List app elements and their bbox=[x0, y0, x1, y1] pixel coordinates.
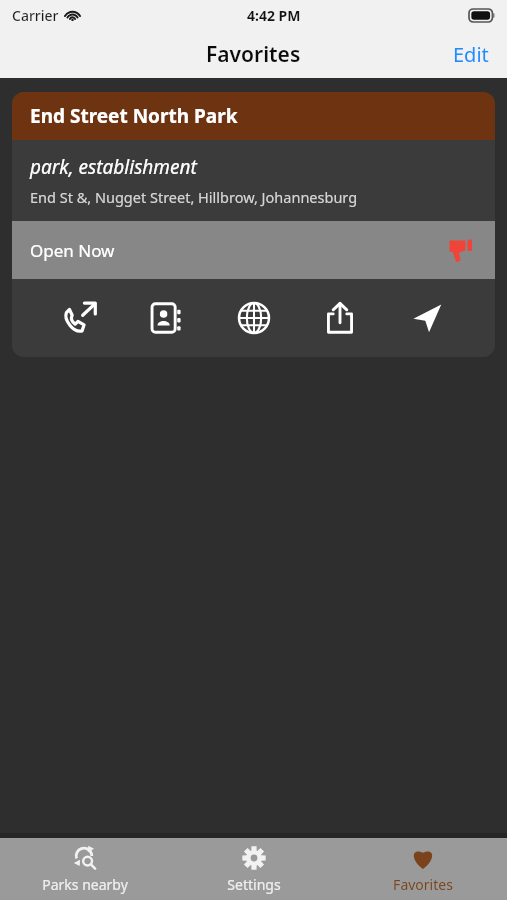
staticText: Carrier bbox=[12, 6, 59, 25]
button[interactable]: Directions bbox=[398, 289, 456, 347]
staticText: End Street North Park bbox=[30, 103, 238, 129]
button[interactable]: Favorites bbox=[338, 838, 507, 900]
button[interactable]: End Street North Park bbox=[12, 92, 495, 357]
staticText: End St &, Nugget Street, Hillbrow, Johan… bbox=[30, 187, 358, 207]
staticText: Parks nearby bbox=[42, 875, 128, 894]
button[interactable]: Edit bbox=[435, 33, 507, 76]
button[interactable]: Website bbox=[225, 289, 283, 347]
staticText: Favorites bbox=[206, 40, 301, 69]
staticText: park, establishment bbox=[30, 154, 197, 180]
button[interactable]: Settings bbox=[169, 838, 338, 900]
button[interactable]: Report closed bbox=[443, 233, 477, 267]
staticText: Settings bbox=[227, 875, 281, 894]
button[interactable]: Open Now bbox=[12, 221, 495, 279]
staticText: Edit bbox=[453, 41, 489, 68]
button[interactable]: Parks nearby bbox=[0, 838, 169, 900]
button[interactable]: Share bbox=[311, 289, 369, 347]
staticText: 4:42 PM bbox=[247, 6, 301, 25]
staticText: Favorites bbox=[393, 875, 453, 894]
staticText: Open Now bbox=[30, 239, 115, 262]
button[interactable]: Contact bbox=[138, 289, 196, 347]
button[interactable]: Call bbox=[51, 289, 109, 347]
